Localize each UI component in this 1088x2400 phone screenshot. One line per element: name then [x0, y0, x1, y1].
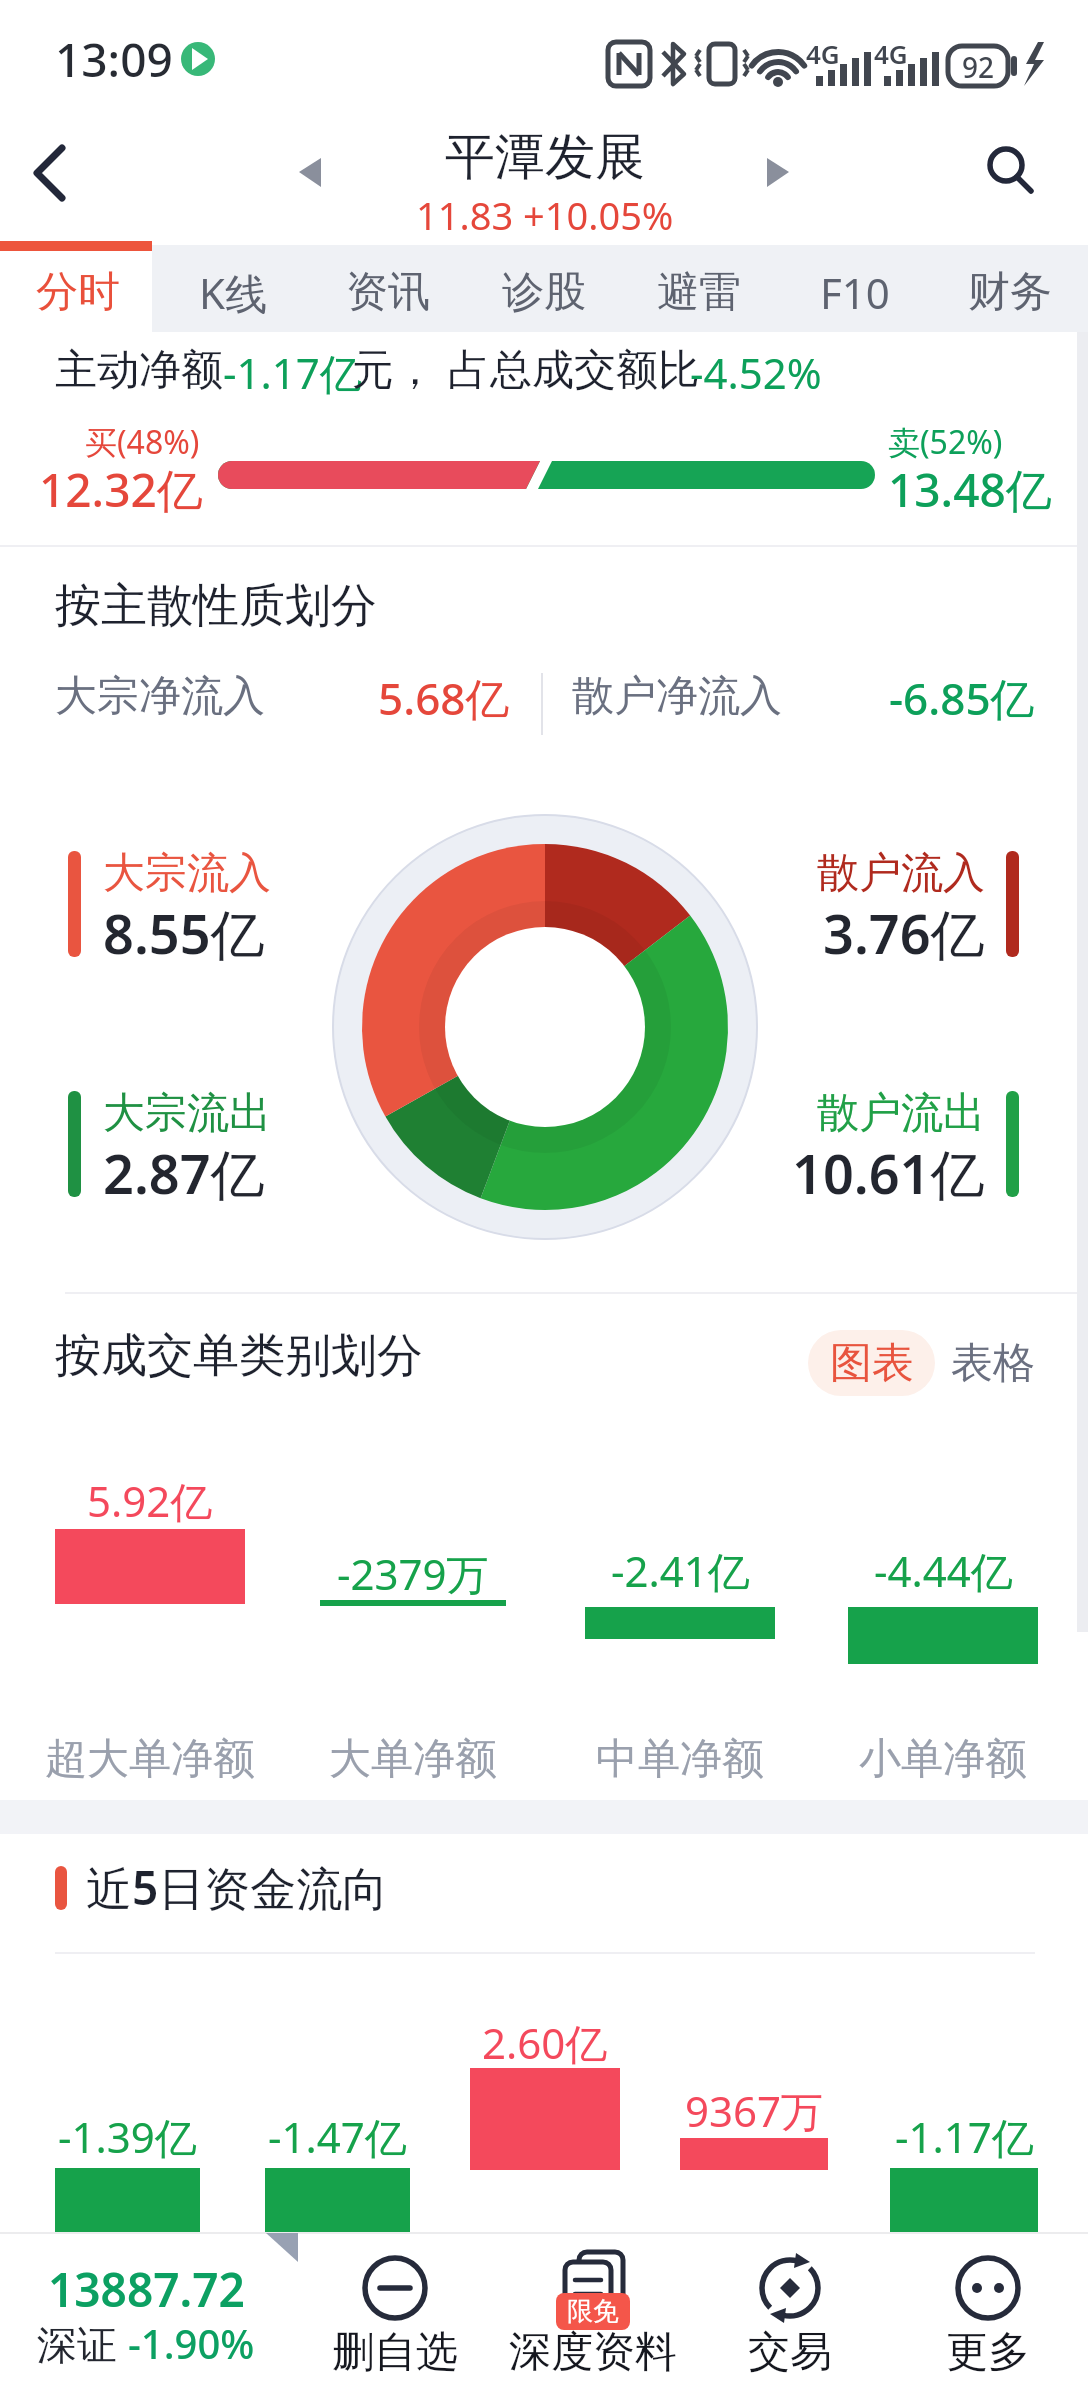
staticText: 买(48%): [85, 420, 200, 464]
staticText: 诊股: [502, 266, 586, 319]
staticText: -4.52%: [690, 344, 822, 401]
staticText: 92: [962, 48, 995, 86]
button[interactable]: 交易: [695, 2240, 885, 2390]
staticText: K线: [199, 264, 267, 321]
staticText: 交易: [748, 2326, 832, 2379]
staticText: 3.76亿: [823, 896, 985, 970]
staticText: 中单净额: [596, 1733, 764, 1786]
staticText: 4G: [806, 36, 840, 71]
staticText: 避雷: [657, 266, 741, 319]
button[interactable]: 诊股: [466, 253, 622, 332]
staticText: 超大单净额: [45, 1733, 255, 1786]
staticText: -1.47亿: [268, 2108, 407, 2165]
button[interactable]: 资讯: [310, 253, 466, 332]
staticText: 12.32亿: [39, 458, 203, 521]
staticText: 10.61亿: [792, 1136, 985, 1210]
button[interactable]: 避雷: [621, 253, 777, 332]
staticText: 11.83 +10.05%: [416, 189, 674, 241]
staticText: 大宗净流入: [55, 670, 265, 723]
staticText: 8.55亿: [103, 896, 265, 970]
button[interactable]: 删自选: [300, 2240, 490, 2390]
staticText: 分时: [36, 266, 120, 319]
staticText: 5.92亿: [87, 1472, 213, 1529]
button[interactable]: K线: [155, 253, 311, 332]
staticText: 删自选: [332, 2326, 458, 2379]
staticText: 大单净额: [329, 1733, 497, 1786]
staticText: 9367万: [685, 2082, 824, 2139]
staticText: 元，: [352, 344, 436, 397]
staticText: 表格: [951, 1337, 1035, 1390]
button[interactable]: [960, 118, 1070, 228]
button[interactable]: 深度资料: [498, 2240, 688, 2390]
button[interactable]: 更多: [893, 2240, 1083, 2390]
staticText: 深证: [37, 2316, 128, 2371]
button[interactable]: 财务: [932, 253, 1088, 332]
staticText: 大宗流出: [103, 1087, 271, 1140]
staticText: 财务: [968, 266, 1052, 319]
staticText: 卖(52%): [888, 420, 1003, 464]
staticText: 散户流出: [817, 1087, 985, 1140]
staticText: 小单净额: [859, 1733, 1027, 1786]
staticText: 占总成交额比: [448, 344, 700, 397]
staticText: 限免: [567, 2295, 619, 2328]
button[interactable]: [0, 118, 110, 228]
staticText: 大宗流入: [103, 847, 271, 900]
staticText: -1.39亿: [58, 2108, 197, 2165]
staticText: -4.44亿: [874, 1542, 1013, 1599]
staticText: -6.85亿: [889, 668, 1035, 728]
staticText: 散户流入: [817, 847, 985, 900]
staticText: 按成交单类别划分: [55, 1327, 423, 1385]
staticText: 近5日资金流向: [86, 1856, 389, 1919]
button[interactable]: 表格: [948, 1330, 1038, 1396]
staticText: 更多: [946, 2326, 1030, 2379]
staticText: F10: [820, 264, 890, 321]
button[interactable]: [20, 2246, 272, 2386]
staticText: 5.68亿: [378, 668, 510, 728]
staticText: 主动净额: [55, 344, 223, 397]
button[interactable]: 分时: [0, 253, 156, 332]
staticText: 深度资料: [509, 2326, 677, 2379]
staticText: 资讯: [346, 266, 430, 319]
staticText: 13887.72: [48, 2258, 245, 2321]
staticText: -1.17亿: [895, 2108, 1034, 2165]
staticText: 按主散性质划分: [55, 577, 377, 635]
staticText: 13.48亿: [888, 458, 1052, 521]
staticText: -2.41亿: [611, 1542, 750, 1599]
staticText: 平潭发展: [445, 126, 645, 189]
staticText: 13:09: [55, 28, 173, 91]
button[interactable]: 图表: [808, 1330, 935, 1396]
staticText: 散户净流入: [572, 670, 782, 723]
button[interactable]: F10: [777, 253, 933, 332]
staticText: -1.17亿: [223, 344, 362, 401]
staticText: 4G: [874, 36, 908, 71]
staticText: 2.60亿: [482, 2014, 608, 2071]
staticText: 2.87亿: [103, 1136, 265, 1210]
staticText: 图表: [830, 1337, 914, 1390]
staticText: -2379万: [337, 1545, 489, 1602]
staticText: -1.90%: [128, 2316, 255, 2370]
